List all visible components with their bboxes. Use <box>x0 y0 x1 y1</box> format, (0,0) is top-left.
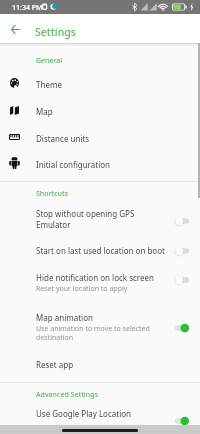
button[interactable]: Reset app <box>0 353 200 375</box>
staticText: Stop without opening GPS <box>36 208 135 219</box>
staticText: Use Google Play Location <box>36 408 131 419</box>
button[interactable]: Start on last used location on boot <box>0 239 200 262</box>
staticText: Map animation <box>36 312 93 323</box>
staticText: Advanced Settings <box>36 390 98 400</box>
button[interactable]: Stop without opening GPS <box>0 203 200 234</box>
staticText: Reset app <box>36 359 74 370</box>
staticText: Emulator <box>36 219 71 230</box>
button[interactable]: Map animation <box>0 307 200 343</box>
staticText: Reset your location to apply <box>36 284 128 294</box>
staticText: 11:34 PM <box>12 3 43 13</box>
staticText: Initial configuration <box>36 159 110 170</box>
button[interactable]: Back <box>4 18 26 40</box>
button[interactable]: Initial configuration <box>0 150 200 176</box>
staticText: Map <box>36 106 53 117</box>
staticText: General <box>36 56 63 66</box>
staticText: Start on last used location on boot <box>36 245 165 256</box>
button[interactable]: Hide notification on lock screen <box>0 267 200 296</box>
button[interactable]: Theme <box>0 70 200 96</box>
staticText: Hide notification on lock screen <box>36 272 154 283</box>
button[interactable]: Map <box>0 97 200 123</box>
button[interactable]: Use Google Play Location <box>0 402 200 428</box>
button[interactable]: Distance units <box>0 124 200 150</box>
staticText: Theme <box>36 79 62 90</box>
staticText: Distance units <box>36 133 90 144</box>
staticText: Use animation to move to selected <box>36 324 150 334</box>
staticText: Settings <box>35 25 76 39</box>
staticText: Shortcuts <box>36 189 69 199</box>
staticText: destination <box>36 333 74 343</box>
